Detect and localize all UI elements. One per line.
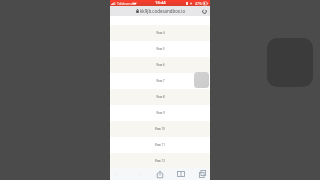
button[interactable]: Reload bbox=[201, 8, 207, 14]
staticText: Row 5 bbox=[156, 47, 165, 51]
staticText: Row 4 bbox=[156, 31, 165, 35]
staticText: Telekom.de bbox=[117, 1, 136, 6]
button[interactable]: Row 7 bbox=[110, 73, 210, 89]
button[interactable]: Row 5 bbox=[110, 41, 210, 57]
button[interactable]: Tabs bbox=[196, 169, 208, 179]
button[interactable]: Row 9 bbox=[110, 105, 210, 121]
staticText: Row 10 bbox=[155, 127, 165, 131]
staticText: 47% bbox=[195, 1, 202, 6]
staticText: Row 8 bbox=[156, 95, 165, 99]
button[interactable]: Row 13 bbox=[110, 169, 210, 180]
button[interactable]: Share bbox=[154, 169, 166, 179]
button[interactable]: Row 12 bbox=[110, 153, 210, 169]
staticText: Row 12 bbox=[155, 159, 165, 163]
button[interactable]: Row 10 bbox=[110, 121, 210, 137]
staticText: kk9jb.codesandbox.io bbox=[140, 8, 186, 14]
button[interactable]: Row 8 bbox=[110, 89, 210, 105]
staticText: Row 13 bbox=[155, 173, 165, 177]
staticText: Row 11 bbox=[155, 143, 165, 147]
staticText: Row 6 bbox=[156, 63, 165, 67]
staticText: 16:44 bbox=[155, 0, 166, 6]
button[interactable]: Row 11 bbox=[110, 137, 210, 153]
staticText: Row 7 bbox=[156, 79, 165, 83]
button[interactable]: Bookmarks bbox=[175, 169, 187, 179]
button[interactable]: Row 6 bbox=[110, 57, 210, 73]
button[interactable]: Row 4 bbox=[110, 25, 210, 41]
staticText: Row 9 bbox=[156, 111, 165, 115]
